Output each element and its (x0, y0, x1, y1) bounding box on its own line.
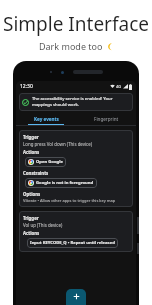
button[interactable]: Google is not in foreground (25, 178, 97, 188)
staticText: 12:30 (20, 83, 33, 90)
button[interactable]: Input KEYCODE_Q • Repeat until released (27, 238, 118, 248)
staticText: Actions (23, 230, 40, 236)
staticText: Simple Interface (3, 11, 149, 37)
button[interactable]: Fingerprint (76, 113, 136, 124)
staticText: Actions (23, 149, 40, 155)
staticText: Fingerprint (94, 116, 119, 122)
staticText: Vibrate • Allow other apps to trigger th… (23, 198, 116, 203)
staticText: Trigger (23, 134, 39, 140)
button[interactable]: Add key map (66, 289, 86, 305)
button[interactable]: Key events (16, 113, 76, 124)
staticText: 4G (116, 84, 122, 89)
staticText: Long press Vol down (This device) (23, 141, 93, 147)
staticText: Google is not in foreground (36, 180, 94, 186)
staticText: Open Google (36, 159, 63, 165)
button[interactable]: The accessibility service is enabled! Yo… (19, 93, 133, 111)
button[interactable]: Trigger (19, 130, 133, 207)
staticText: The accessibility service is enabled! Yo… (32, 96, 130, 108)
staticText: Key events (34, 116, 59, 122)
staticText: Trigger (23, 215, 39, 221)
staticText: Vol up (This device) (23, 222, 63, 228)
staticText: Constraints (23, 170, 49, 176)
button[interactable]: Open Google (25, 157, 66, 167)
staticText: Options (23, 191, 41, 197)
button[interactable]: Trigger (19, 211, 133, 252)
staticText: Input KEYCODE_Q • Repeat until released (30, 240, 115, 246)
staticText: Dark mode too (39, 40, 105, 52)
